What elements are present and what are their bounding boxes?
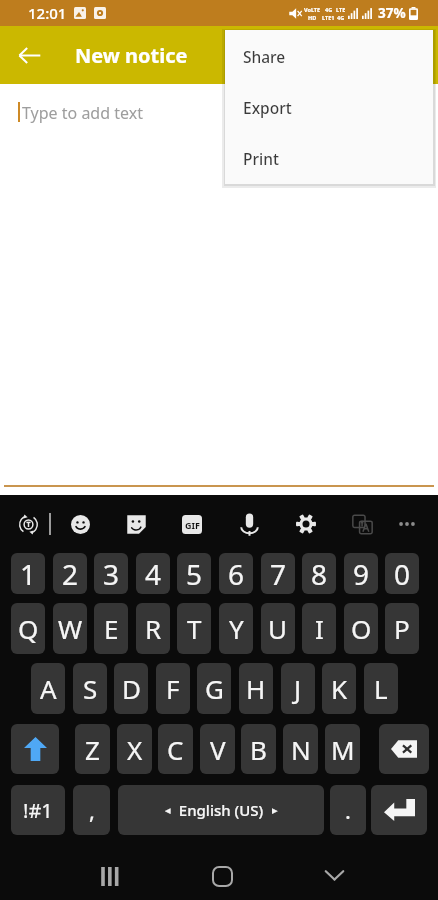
staticText: Export — [243, 97, 292, 118]
button[interactable]: 8 — [302, 553, 336, 594]
staticText: E — [104, 611, 119, 646]
staticText: G — [205, 671, 224, 706]
button[interactable]: 0 — [385, 553, 419, 594]
button[interactable]: 3 — [94, 553, 128, 594]
button[interactable]: Text extraction — [340, 502, 384, 546]
button[interactable]: Export — [225, 82, 433, 133]
button[interactable]: L — [364, 663, 398, 714]
button[interactable]: G — [197, 663, 231, 714]
staticText: X — [127, 732, 143, 767]
button[interactable]: 7 — [261, 553, 295, 594]
staticText: P — [394, 611, 410, 646]
button[interactable]: C — [158, 724, 193, 774]
staticText: Type to add text — [22, 102, 143, 124]
staticText: LTE — [336, 6, 346, 13]
staticText: D — [122, 671, 141, 706]
button[interactable]: !#1 — [11, 785, 65, 835]
button[interactable]: A — [31, 663, 65, 714]
button[interactable]: Enter — [371, 785, 427, 835]
button[interactable]: , — [73, 785, 110, 835]
button[interactable]: Navigate up — [0, 26, 58, 84]
staticText: 3 — [103, 555, 120, 593]
staticText: K — [331, 671, 348, 706]
staticText: ▸ — [272, 804, 278, 817]
staticText: A — [40, 671, 57, 706]
button[interactable]: Q — [11, 603, 45, 654]
staticText: F — [166, 671, 180, 706]
staticText: 8 — [311, 555, 328, 593]
staticText: 4G — [337, 14, 345, 21]
button[interactable]: F — [156, 663, 190, 714]
button[interactable]: K — [322, 663, 356, 714]
staticText: Y — [229, 611, 244, 646]
button[interactable]: V — [200, 724, 235, 774]
staticText: S — [83, 671, 98, 706]
button[interactable]: U — [261, 603, 295, 654]
button[interactable]: J — [281, 663, 315, 714]
staticText: 7 — [270, 555, 287, 593]
staticText: Z — [85, 732, 100, 767]
button[interactable]: D — [114, 663, 148, 714]
staticText: 9 — [353, 555, 370, 593]
staticText: O — [351, 611, 372, 646]
button[interactable]: X — [117, 724, 152, 774]
button[interactable]: B — [241, 724, 276, 774]
staticText: V — [210, 732, 226, 767]
button[interactable]: 6 — [219, 553, 253, 594]
button[interactable]: GIF — [170, 502, 214, 546]
staticText: L — [374, 671, 388, 706]
staticText: Q — [18, 611, 39, 646]
button[interactable]: N — [283, 724, 318, 774]
button[interactable]: Settings — [284, 502, 328, 546]
staticText: B — [250, 732, 267, 767]
button[interactable]: E — [94, 603, 128, 654]
staticText: 37% — [378, 4, 406, 22]
button[interactable]: Space — [118, 785, 324, 835]
button[interactable]: H — [239, 663, 273, 714]
button[interactable]: 2 — [53, 553, 87, 594]
button[interactable]: Emoji — [58, 502, 102, 546]
staticText: 6 — [228, 555, 245, 593]
staticText: 2 — [62, 555, 79, 593]
staticText: !#1 — [23, 797, 53, 824]
button[interactable]: Shift — [11, 724, 59, 774]
button[interactable]: R — [136, 603, 170, 654]
button[interactable]: 9 — [344, 553, 378, 594]
button[interactable]: More options — [385, 502, 429, 546]
button[interactable]: S — [73, 663, 107, 714]
staticText: T — [187, 611, 202, 646]
button[interactable]: I — [302, 603, 336, 654]
button[interactable]: . — [330, 785, 366, 835]
button[interactable]: O — [344, 603, 378, 654]
staticText: New notice — [75, 42, 188, 69]
button[interactable]: 5 — [177, 553, 211, 594]
staticText: H — [246, 671, 266, 706]
staticText: U — [268, 611, 288, 646]
staticText: 4G — [325, 6, 333, 13]
button[interactable]: P — [385, 603, 419, 654]
staticText: J — [294, 671, 302, 706]
staticText: C — [167, 732, 184, 767]
button[interactable]: Share — [225, 30, 433, 82]
staticText: N — [291, 732, 311, 767]
button[interactable]: Translate — [6, 502, 50, 546]
button[interactable]: W — [53, 603, 87, 654]
staticText: M — [331, 732, 355, 767]
button[interactable]: Stickers — [114, 502, 158, 546]
button[interactable]: Recent apps — [54, 852, 166, 900]
button[interactable]: Y — [219, 603, 253, 654]
button[interactable]: Home — [166, 852, 278, 900]
staticText: R — [145, 611, 162, 646]
button[interactable]: Z — [75, 724, 110, 774]
button[interactable]: T — [177, 603, 211, 654]
staticText: English (US) — [171, 800, 272, 820]
button[interactable]: 4 — [136, 553, 170, 594]
button[interactable]: Delete — [379, 724, 429, 774]
staticText: 4 — [145, 555, 162, 593]
button[interactable]: Print — [225, 133, 433, 184]
button[interactable]: M — [325, 724, 360, 774]
staticText: . — [345, 795, 351, 825]
button[interactable]: Back — [278, 852, 390, 900]
button[interactable]: 1 — [11, 553, 45, 594]
button[interactable]: Voice input — [227, 502, 271, 546]
